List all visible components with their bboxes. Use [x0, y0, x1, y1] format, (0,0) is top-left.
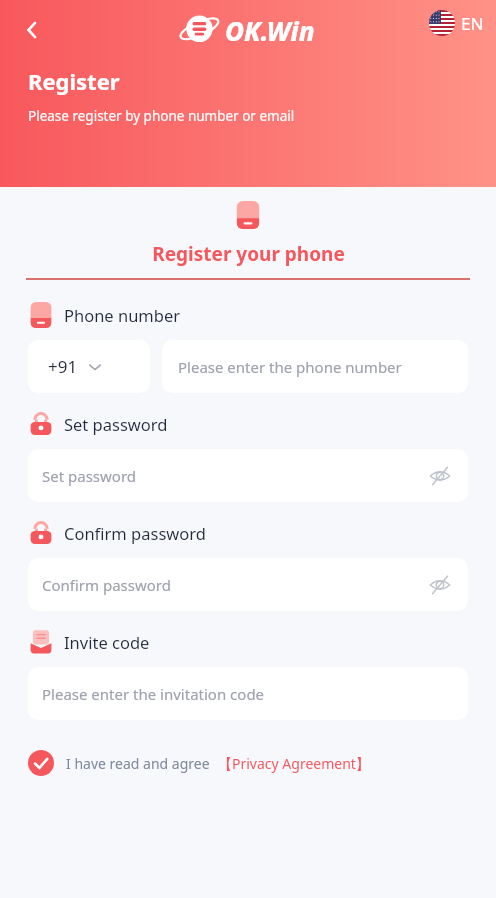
- button[interactable]: OK.Win: [179, 10, 317, 50]
- staticText: Set password: [64, 413, 168, 435]
- button[interactable]: Show password: [426, 571, 454, 599]
- button[interactable]: Confirm password: [28, 558, 468, 611]
- staticText: EN: [461, 12, 484, 35]
- staticText: Please enter the invitation code: [42, 684, 265, 704]
- staticText: Confirm password: [64, 522, 206, 544]
- staticText: 【Privacy Agreement】: [218, 754, 370, 773]
- staticText: Invite code: [64, 631, 150, 653]
- button[interactable]: Back: [10, 8, 54, 52]
- staticText: OK.Win: [225, 13, 315, 48]
- staticText: Phone number: [64, 304, 181, 326]
- staticText: I have read and agree: [66, 754, 210, 773]
- staticText: Register: [28, 66, 120, 96]
- button[interactable]: EN: [429, 10, 484, 36]
- staticText: Confirm password: [42, 575, 171, 595]
- button[interactable]: +91: [28, 340, 150, 393]
- staticText: Register your phone: [152, 241, 345, 267]
- button[interactable]: Please enter the phone number: [162, 340, 468, 393]
- staticText: +91: [48, 355, 78, 378]
- staticText: Please register by phone number or email: [28, 107, 295, 125]
- button[interactable]: Show password: [426, 462, 454, 490]
- staticText: Please enter the phone number: [178, 357, 402, 377]
- button[interactable]: I have read and agree: [28, 746, 468, 780]
- button[interactable]: Please enter the invitation code: [28, 667, 468, 720]
- staticText: Set password: [42, 466, 137, 486]
- button[interactable]: Set password: [28, 449, 468, 502]
